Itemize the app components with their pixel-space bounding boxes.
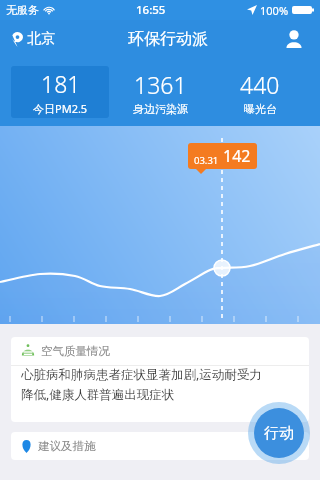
staticText: 181 <box>41 68 81 99</box>
staticText: 北京 <box>27 30 55 48</box>
staticText: 心脏病和肺病患者症状显著加剧,运动耐受力降低,健康人群普遍出现症状 <box>21 366 266 403</box>
staticText: 16:55 <box>136 2 166 18</box>
staticText: 曝光台 <box>244 102 277 116</box>
staticText: 空气质量情况 <box>41 344 110 358</box>
staticText: 环保行动派 <box>128 29 208 49</box>
staticText: 行动 <box>264 424 294 443</box>
staticText: 无服务 <box>6 3 39 17</box>
staticText: 100% <box>260 3 289 18</box>
button[interactable]: 行动 <box>248 402 310 464</box>
staticText: 1361 <box>134 69 187 100</box>
staticText: 身边污染源 <box>133 102 188 116</box>
button[interactable]: 北京 <box>10 26 57 52</box>
button[interactable]: 1361 <box>111 66 209 118</box>
staticText: 建议及措施 <box>38 439 96 453</box>
staticText: 今日PM2.5 <box>33 101 88 116</box>
staticText: 142 <box>223 145 251 167</box>
button[interactable]: 440 <box>211 66 309 118</box>
staticText: 03.31 <box>194 154 219 167</box>
staticText: 440 <box>240 69 280 100</box>
button[interactable]: 181 <box>11 66 109 118</box>
button[interactable]: 建议及措施 <box>11 432 309 460</box>
button[interactable]: 空气质量情况 <box>11 337 309 365</box>
button[interactable]: Profile <box>280 25 308 53</box>
